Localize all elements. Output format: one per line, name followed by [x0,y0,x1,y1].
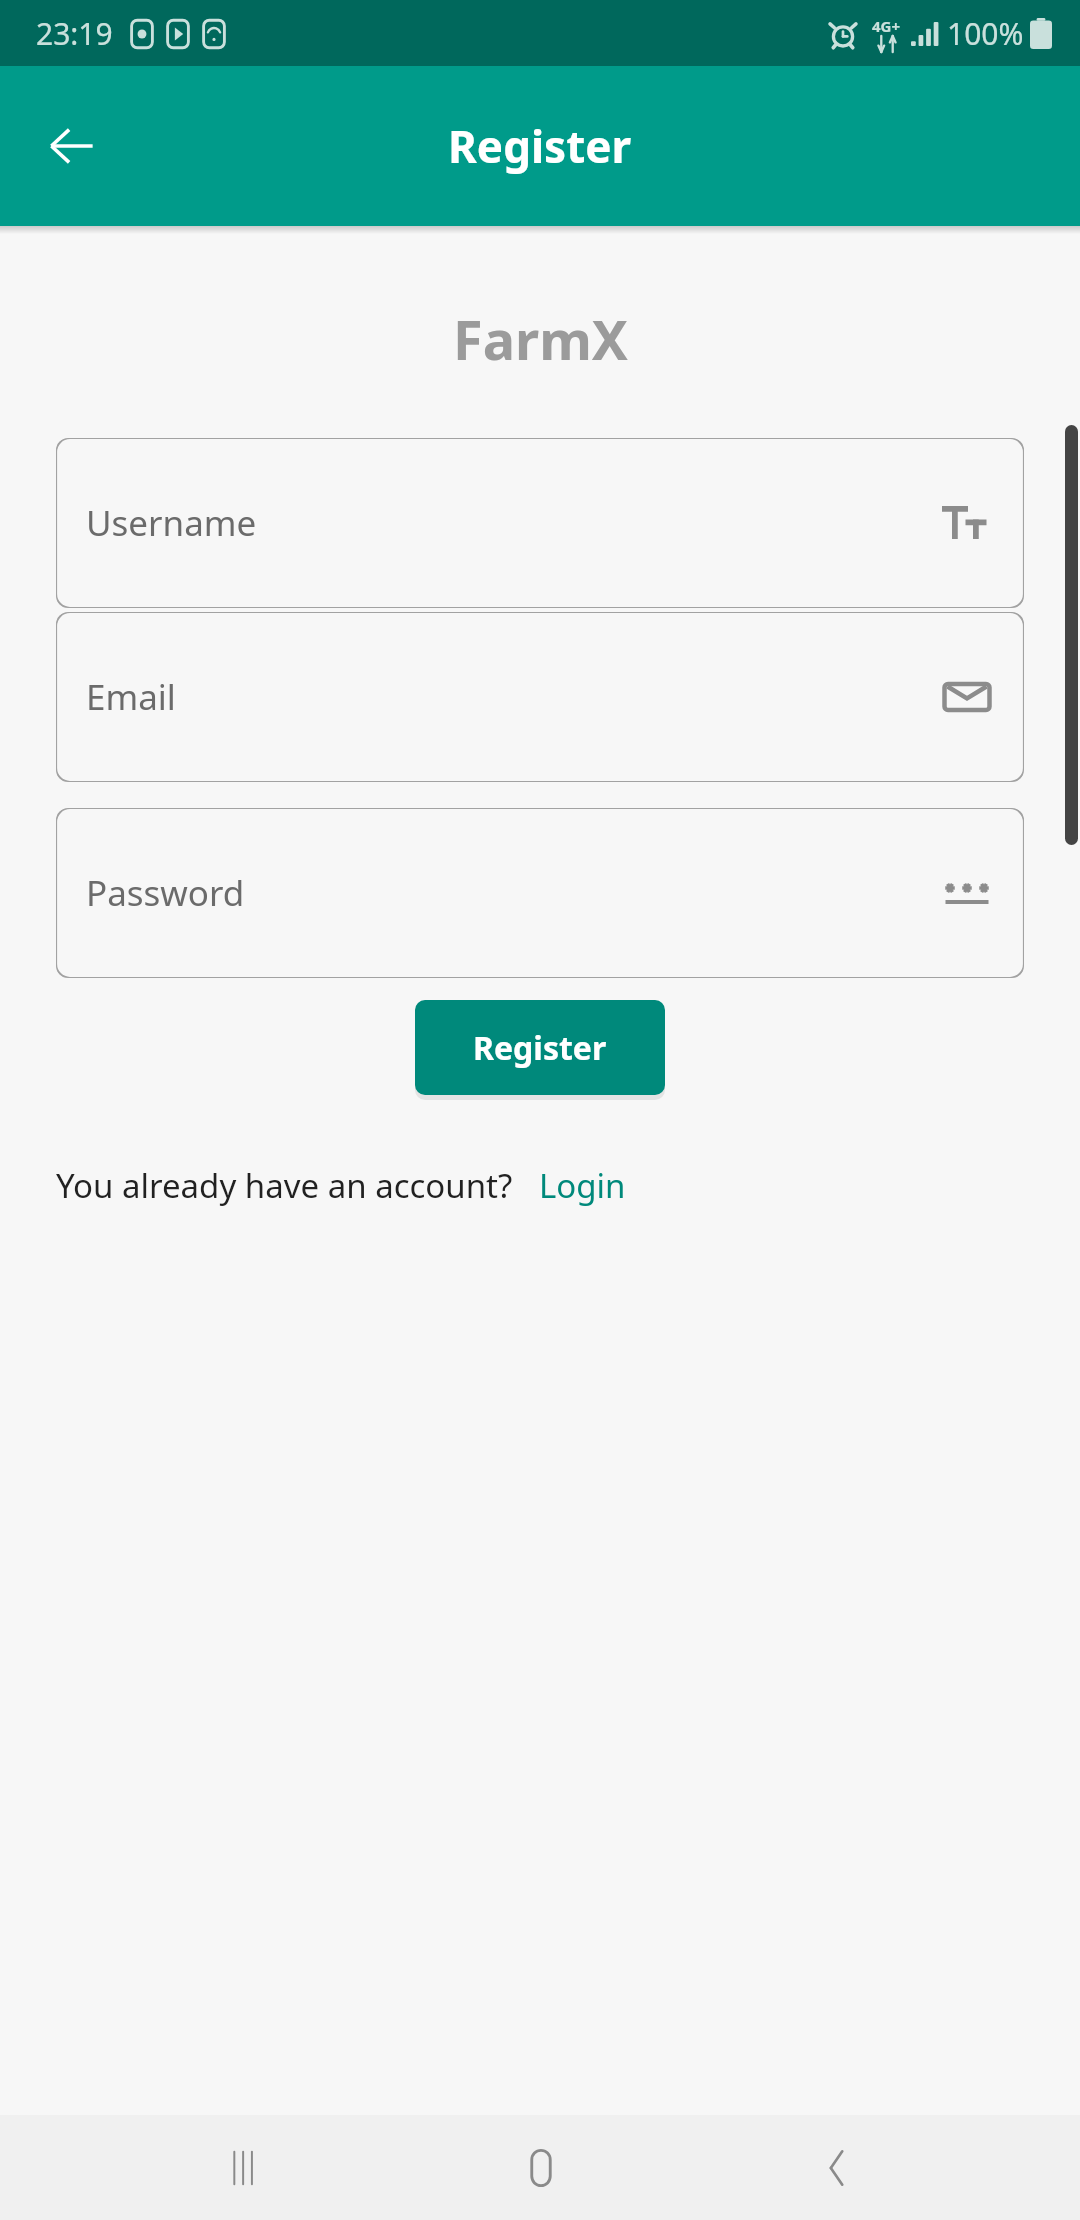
staticText: FarmX [453,302,628,376]
staticText: 100% [947,13,1024,54]
button[interactable]: Password [56,808,1024,978]
button[interactable]: Home [488,2115,593,2220]
staticText: 4G+ [872,16,901,36]
staticText: You already have an account? [56,1163,513,1208]
button[interactable]: Back [22,96,122,196]
staticText: Login [539,1163,626,1208]
button[interactable]: Username [56,438,1024,608]
staticText: Register [473,1026,607,1070]
staticText: Register [448,116,632,176]
staticText: 23:19 [36,13,113,54]
button[interactable]: Register [415,1000,665,1095]
staticText: Email [86,673,176,721]
button[interactable]: Login [535,1163,630,1208]
button[interactable]: Recents [191,2115,296,2220]
button[interactable]: Back [784,2115,889,2220]
staticText: Username [86,499,257,547]
staticText: Password [86,869,245,917]
button[interactable]: Email [56,612,1024,782]
